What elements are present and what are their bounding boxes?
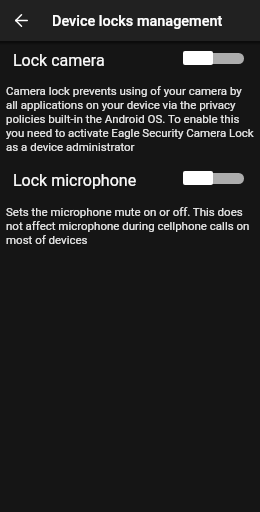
button[interactable]: Off	[183, 48, 244, 68]
button[interactable]: Lock microphone	[0, 169, 260, 247]
button[interactable]: Navigate up	[0, 1, 40, 41]
staticText: Camera lock prevents using of your camer…	[6, 84, 255, 154]
button[interactable]: Off	[183, 168, 244, 188]
staticText: Lock microphone	[13, 171, 137, 190]
staticText: Device locks management	[52, 13, 223, 30]
staticText: Lock camera	[13, 51, 105, 70]
staticText: Sets the microphone mute on or off. This…	[6, 205, 255, 247]
button[interactable]: Lock camera	[0, 49, 260, 154]
